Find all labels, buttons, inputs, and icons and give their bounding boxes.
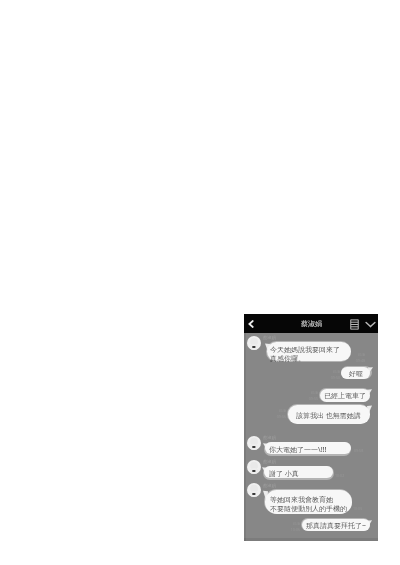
staticText: 蔡淑娟 — [263, 335, 276, 340]
staticText: 等她回來我會教育她 — [270, 495, 333, 504]
button[interactable]: Back — [246, 319, 256, 329]
button[interactable]: Profile photo — [247, 483, 261, 497]
button[interactable] — [264, 466, 333, 478]
staticText: 那真請真要拜托了~ — [306, 521, 367, 531]
button[interactable] — [320, 389, 370, 402]
button[interactable]: Chat menu — [349, 319, 360, 330]
staticText: 蔡淑娟 — [263, 435, 276, 440]
staticText: 不要隨便動別人的手機的 — [270, 504, 347, 513]
staticText: 該算我出 也無需她講 — [296, 411, 361, 421]
button[interactable]: Profile photo — [247, 336, 261, 350]
button[interactable]: Expand — [365, 319, 376, 330]
staticText: 已經上電車了 — [324, 391, 366, 400]
button[interactable] — [265, 490, 352, 514]
staticText: 蔡淑娟 — [263, 459, 276, 464]
button[interactable] — [288, 405, 370, 424]
staticText: 好喔 — [349, 369, 363, 378]
staticText: 蔡淑娟 — [301, 319, 322, 328]
staticText: 今天她媽說我要回來了 — [270, 345, 340, 354]
staticText: 真感你囉。 — [270, 354, 305, 363]
staticText: 蔡淑娟 — [263, 483, 276, 488]
button[interactable]: Profile photo — [247, 436, 261, 450]
button[interactable] — [265, 442, 351, 454]
button[interactable] — [341, 367, 370, 379]
button[interactable] — [267, 342, 351, 361]
button[interactable]: Profile photo — [247, 460, 261, 474]
staticText: 謝了 小真 — [269, 469, 299, 479]
staticText: 你大電她了一一\!!! — [269, 445, 327, 455]
button[interactable] — [302, 519, 370, 531]
